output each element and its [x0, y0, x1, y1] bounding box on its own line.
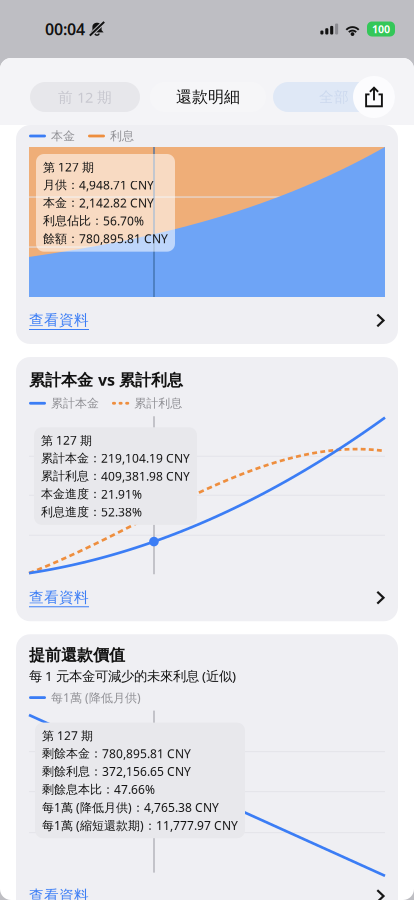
- staticText: 剩餘本金：: [42, 746, 102, 761]
- staticText: 每1萬 (降低月供): [51, 690, 141, 705]
- staticText: 查看資料: [29, 311, 89, 329]
- staticText: 月供：: [43, 177, 79, 192]
- staticText: 剩餘息本比：: [42, 782, 114, 797]
- staticText: 利息: [110, 129, 134, 143]
- staticText: 100: [372, 22, 390, 36]
- staticText: 本金：: [43, 195, 79, 210]
- staticText: 每1萬 (縮短還款期)：: [42, 817, 156, 833]
- staticText: 本金: [51, 129, 75, 143]
- button[interactable]: 查看資料: [16, 574, 398, 621]
- staticText: 21.91%: [101, 486, 142, 502]
- button[interactable]: Share: [353, 76, 395, 118]
- staticText: 全部: [319, 88, 349, 106]
- staticText: 4,765.38 CNY: [144, 799, 219, 815]
- staticText: 409,381.98 CNY: [101, 468, 190, 484]
- staticText: 780,895.81 CNY: [79, 231, 168, 247]
- staticText: 52.38%: [101, 504, 142, 520]
- staticText: 本金進度：: [41, 487, 101, 501]
- staticText: 還款明細: [176, 87, 240, 107]
- button[interactable]: 查看資料: [16, 873, 398, 900]
- staticText: 累計本金：: [41, 451, 101, 465]
- staticText: 查看資料: [29, 588, 89, 606]
- staticText: 前 12 期: [58, 87, 112, 107]
- staticText: 11,777.97 CNY: [156, 817, 238, 833]
- staticText: 每 1 元本金可減少的未來利息 (近似): [29, 667, 236, 685]
- staticText: 4,948.71 CNY: [79, 177, 154, 193]
- staticText: 372,156.65 CNY: [102, 763, 191, 779]
- staticText: 利息進度：: [41, 505, 101, 519]
- staticText: 第 127 期: [42, 728, 93, 743]
- staticText: 查看資料: [29, 887, 89, 900]
- staticText: 累計利息：: [41, 469, 101, 483]
- staticText: 累計利息: [134, 396, 182, 411]
- staticText: 剩餘利息：: [42, 764, 102, 779]
- staticText: 利息佔比：: [43, 213, 103, 228]
- staticText: 00:04: [45, 18, 85, 40]
- button[interactable]: 查看資料: [16, 297, 398, 344]
- staticText: 累計本金 vs 累計利息: [29, 369, 183, 390]
- staticText: 第 127 期: [41, 432, 92, 448]
- staticText: 219,104.19 CNY: [101, 450, 190, 466]
- staticText: 2,142.82 CNY: [79, 195, 154, 211]
- staticText: 第 127 期: [43, 159, 94, 175]
- staticText: 780,895.81 CNY: [102, 745, 191, 761]
- staticText: 47.66%: [114, 781, 155, 797]
- staticText: 餘額：: [43, 231, 79, 246]
- staticText: 提前還款價值: [29, 645, 125, 665]
- staticText: 56.70%: [103, 213, 144, 229]
- staticText: 累計本金: [51, 396, 99, 411]
- staticText: 每1萬 (降低月供)：: [42, 799, 144, 815]
